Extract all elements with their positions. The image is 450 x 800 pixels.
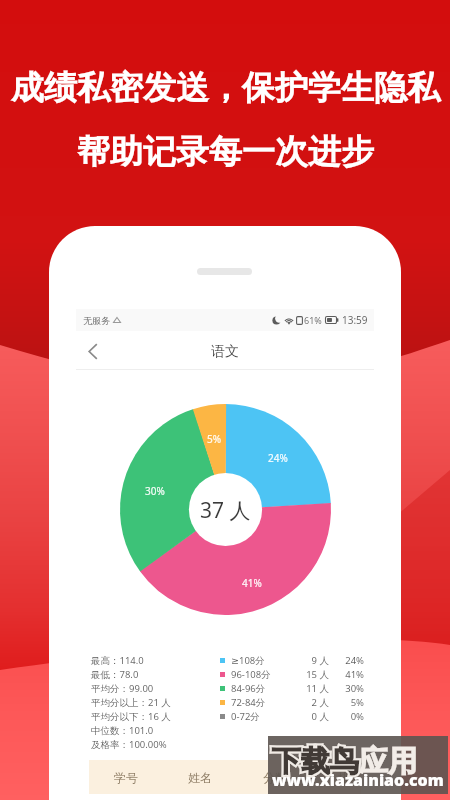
staticText: 15 人: [293, 668, 329, 681]
staticText: 中位数：101.0: [91, 724, 154, 737]
staticText: 无服务: [83, 315, 110, 326]
staticText: 0 人: [293, 710, 329, 723]
staticText: 姓名: [182, 770, 218, 785]
staticText: www.xiazainiao.com: [272, 769, 444, 791]
staticText: 成绩私密发送，保护学生隐私: [11, 67, 440, 109]
staticText: 84-96分: [231, 682, 293, 695]
staticText: 72-84分: [231, 696, 293, 709]
staticText: 5%: [329, 696, 364, 709]
staticText: 及格率：100.00%: [91, 738, 167, 751]
staticText: 24%: [268, 451, 288, 465]
staticText: 语文: [211, 343, 239, 361]
staticText: 帮助记录每一次进步: [77, 131, 374, 173]
button[interactable]: 学号: [89, 760, 361, 794]
staticText: 41%: [329, 668, 364, 681]
staticText: 平均分以上：21 人: [91, 696, 171, 709]
staticText: 13:59: [342, 313, 368, 327]
staticText: 41%: [242, 576, 262, 590]
staticText: 37 人: [200, 496, 251, 525]
staticText: 9 人: [293, 654, 329, 667]
staticText: 30%: [145, 484, 165, 498]
staticText: 24%: [329, 654, 364, 667]
button[interactable]: Back: [78, 336, 108, 366]
staticText: 最高：114.0: [91, 654, 144, 667]
staticText: 排名: [332, 770, 368, 785]
staticText: 61%: [304, 314, 322, 326]
staticText: 下载鸟: [272, 743, 359, 780]
staticText: 学号: [108, 770, 144, 785]
staticText: 5%: [207, 432, 222, 446]
staticText: 0-72分: [231, 710, 293, 723]
staticText: 下载鸟: [272, 743, 359, 780]
staticText: 最低：78.0: [91, 668, 139, 681]
staticText: 30%: [329, 682, 364, 695]
staticText: ≥108分: [231, 654, 293, 667]
staticText: 应用: [359, 743, 417, 780]
staticText: 分数: [257, 770, 293, 785]
staticText: 平均分：99.00: [91, 682, 154, 695]
staticText: 96-108分: [231, 668, 293, 681]
staticText: 平均分以下：16 人: [91, 710, 171, 723]
staticText: 2 人: [293, 696, 329, 709]
staticText: 11 人: [293, 682, 329, 695]
staticText: 0%: [329, 710, 364, 723]
